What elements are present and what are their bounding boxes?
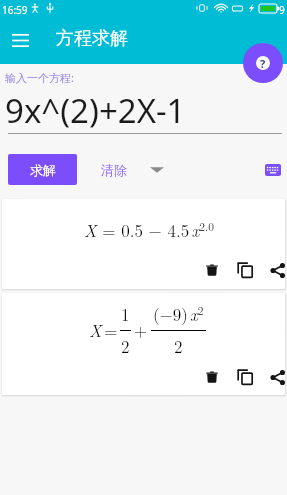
staticText: 求解 bbox=[30, 162, 56, 178]
staticText: 方程求解 bbox=[56, 27, 128, 50]
button[interactable]: Delete bbox=[201, 366, 223, 388]
staticText: 2 bbox=[174, 334, 183, 358]
staticText: 输入一个方程: bbox=[5, 70, 74, 85]
button[interactable]: 清除 bbox=[98, 156, 168, 183]
button[interactable]: Copy bbox=[234, 259, 256, 281]
button[interactable]: Delete bbox=[201, 259, 223, 281]
staticText: X = bbox=[89, 318, 119, 342]
staticText: ? bbox=[260, 56, 266, 70]
staticText: 1 bbox=[121, 302, 130, 326]
staticText: 16:59 bbox=[2, 3, 28, 17]
button[interactable]: X = bbox=[2, 293, 285, 395]
button[interactable]: Copy bbox=[234, 366, 256, 388]
staticText: 2 bbox=[121, 334, 130, 358]
staticText: (−9) x2 bbox=[153, 302, 204, 326]
staticText: X = 0.5 − 4.5 x2.0 bbox=[84, 218, 215, 242]
button[interactable]: Share bbox=[266, 366, 285, 388]
staticText: 9x^(2)+2X-1 bbox=[5, 88, 186, 133]
button[interactable]: 求解 bbox=[8, 154, 77, 185]
button[interactable]: X = 0.5 − 4.5 x2.0 bbox=[2, 199, 285, 289]
button[interactable]: Keyboard bbox=[261, 160, 285, 180]
staticText: + bbox=[134, 318, 148, 342]
button[interactable]: Help bbox=[243, 43, 283, 83]
staticText: 9 bbox=[279, 3, 285, 17]
button[interactable]: Menu bbox=[4, 24, 36, 56]
button[interactable]: Share bbox=[266, 259, 285, 281]
staticText: 清除 bbox=[101, 162, 127, 178]
